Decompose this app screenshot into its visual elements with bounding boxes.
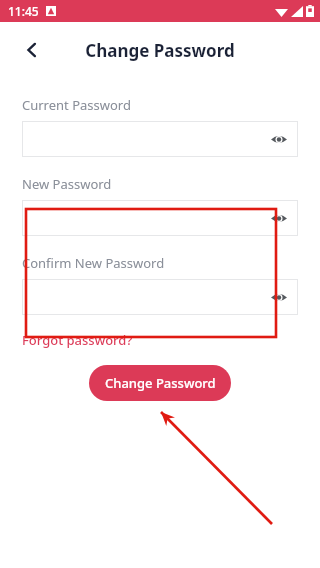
button[interactable]: Show password xyxy=(268,128,290,150)
staticText: 11:45 xyxy=(8,3,39,19)
staticText: Forgot password? xyxy=(22,331,133,349)
staticText: Change Password xyxy=(105,374,216,392)
button[interactable]: Show password xyxy=(268,207,290,229)
button[interactable]: Back xyxy=(12,30,52,70)
button[interactable]: Show password xyxy=(268,286,290,308)
staticText: Confirm New Password xyxy=(22,254,165,272)
button[interactable]: Show password xyxy=(22,279,298,315)
button[interactable]: Forgot password? xyxy=(22,331,133,349)
button[interactable]: Show password xyxy=(22,121,298,157)
staticText: New Password xyxy=(22,175,112,193)
button[interactable]: Change Password xyxy=(89,365,231,401)
button[interactable]: Show password xyxy=(22,200,298,236)
staticText: Change Password xyxy=(85,39,235,62)
staticText: Current Password xyxy=(22,96,131,114)
